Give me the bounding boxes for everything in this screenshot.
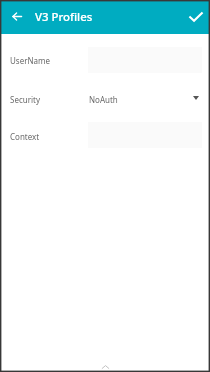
button[interactable]: Save profile bbox=[185, 6, 207, 28]
button[interactable]: Navigate back bbox=[6, 5, 28, 27]
staticText: Context bbox=[10, 131, 40, 142]
button[interactable]: UserName bbox=[2, 47, 202, 73]
staticText: Security bbox=[10, 94, 41, 105]
staticText: UserName bbox=[10, 55, 51, 66]
button[interactable]: Expand bbox=[88, 356, 122, 370]
staticText: V3 Profiles bbox=[35, 9, 93, 25]
button[interactable]: Security bbox=[2, 88, 206, 108]
button[interactable]: Context bbox=[2, 122, 202, 148]
staticText: NoAuth bbox=[89, 94, 118, 105]
